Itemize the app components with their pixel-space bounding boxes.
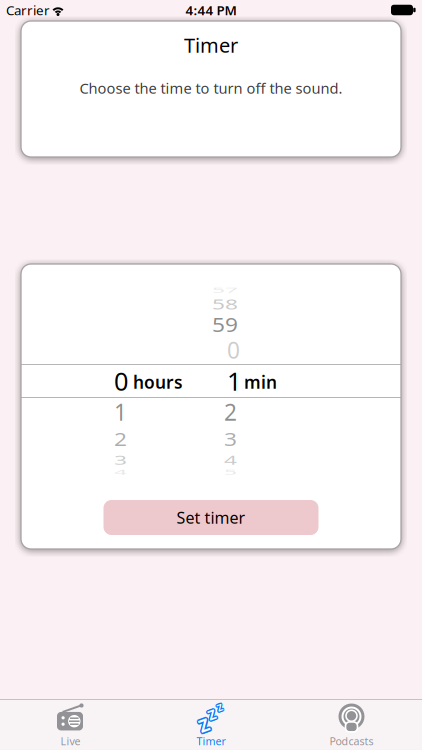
staticText: Z — [217, 701, 222, 714]
staticText: 1 — [114, 397, 127, 427]
staticText: Choose the time to turn off the sound. — [79, 78, 342, 98]
staticText: Set timer — [176, 507, 245, 528]
staticText: Z — [216, 700, 221, 713]
staticText: Z — [217, 703, 222, 715]
staticText: Timer — [196, 734, 225, 748]
staticText: 0 — [114, 364, 128, 398]
staticText: 57 — [212, 275, 238, 305]
staticText: Z — [200, 712, 210, 735]
staticText: 3 — [224, 424, 237, 454]
staticText: Z — [218, 701, 223, 714]
staticText: Z — [216, 701, 221, 714]
staticText: Z — [209, 705, 217, 722]
button[interactable]: Timer — [173, 699, 249, 749]
staticText: Z — [200, 713, 210, 736]
staticText: 4 — [114, 457, 127, 487]
staticText: min — [244, 370, 277, 393]
staticText: Podcasts — [329, 734, 373, 748]
staticText: 2 — [114, 424, 127, 454]
staticText: Z — [199, 715, 209, 738]
staticText: 1 — [227, 364, 241, 398]
staticText: Z — [208, 704, 216, 722]
staticText: Z — [207, 705, 215, 722]
button[interactable]: Set timer — [103, 500, 318, 535]
staticText: Carrier — [6, 1, 50, 19]
staticText: Z — [197, 713, 207, 736]
staticText: Z — [199, 713, 209, 736]
button[interactable]: Podcasts — [313, 699, 389, 749]
staticText: Z — [209, 707, 217, 724]
staticText: Z — [218, 702, 223, 715]
staticText: Z — [198, 712, 208, 735]
staticText: hours — [133, 370, 183, 393]
staticText: 2 — [224, 397, 237, 427]
staticText: Z — [208, 706, 216, 723]
staticText: Z — [199, 712, 209, 735]
staticText: 59 — [212, 309, 238, 339]
staticText: Z — [208, 707, 216, 725]
staticText: 4:44 PM — [185, 1, 236, 19]
staticText: 3 — [114, 445, 127, 475]
staticText: Z — [216, 702, 221, 715]
staticText: Timer — [184, 32, 238, 58]
staticText: Z — [207, 707, 215, 724]
staticText: Z — [218, 700, 223, 713]
staticText: Z — [207, 706, 215, 723]
staticText: 4 — [224, 445, 237, 475]
staticText: Z — [198, 715, 208, 738]
staticText: Z — [217, 700, 222, 712]
staticText: Z — [209, 706, 217, 723]
staticText: 0 — [227, 335, 240, 365]
button[interactable]: Live — [32, 699, 108, 749]
staticText: Z — [200, 715, 210, 738]
staticText: 5 — [224, 457, 237, 487]
staticText: Live — [60, 734, 80, 748]
staticText: 58 — [212, 289, 238, 319]
